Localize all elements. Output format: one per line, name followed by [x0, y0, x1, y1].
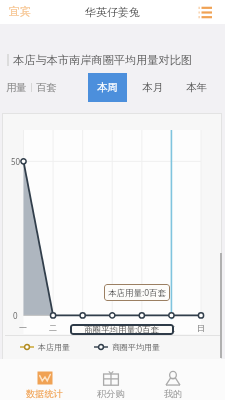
button[interactable]: 本年 [176, 72, 216, 103]
staticText: 商圈平均用量:0百套 [84, 324, 160, 335]
staticText: 六 [167, 323, 175, 333]
staticText: 本年 [186, 81, 207, 94]
staticText: 本店用量:0百套 [108, 287, 167, 299]
staticText: 本店用量 [38, 342, 70, 352]
staticText: 本店与本市南岸商圈平均用量对比图 [13, 53, 192, 67]
button[interactable]: 积分购 [78, 359, 144, 400]
staticText: 日 [197, 323, 205, 333]
staticText: 四 [108, 323, 116, 333]
button[interactable]: 数据统计 [11, 359, 78, 400]
staticText: 积分购 [97, 388, 125, 400]
staticText: 数据统计 [26, 388, 63, 400]
staticText: 本周 [97, 81, 118, 94]
staticText: 本月 [142, 81, 163, 94]
staticText: 五 [138, 323, 146, 333]
staticText: 二 [49, 323, 57, 333]
staticText: 华英仔姜兔 [85, 5, 140, 19]
button[interactable]: 宜宾 [9, 5, 31, 19]
button[interactable]: 本周 [88, 73, 127, 102]
staticText: 商圈平均用量 [112, 342, 160, 352]
button[interactable]: Menu [196, 3, 214, 21]
staticText: 用量 [6, 81, 27, 94]
staticText: 百套 [36, 81, 57, 94]
staticText: 三 [78, 323, 86, 333]
staticText: 0 [13, 310, 18, 321]
button[interactable]: 本月 [132, 72, 173, 103]
button[interactable]: 我的 [144, 359, 202, 400]
staticText: 50 [11, 156, 21, 167]
staticText: 我的 [164, 388, 183, 400]
staticText: 一 [19, 323, 27, 333]
